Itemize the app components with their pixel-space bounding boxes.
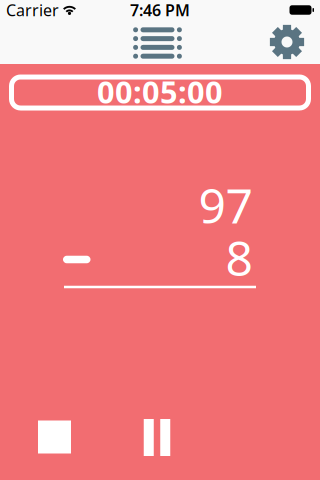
staticText: 7:46 PM xyxy=(130,0,190,21)
button[interactable]: Settings xyxy=(269,24,305,60)
button[interactable]: Problem List xyxy=(133,27,182,59)
button[interactable]: Pause xyxy=(144,419,170,456)
staticText: 00:05:00 xyxy=(97,71,223,112)
staticText: 8 xyxy=(225,226,252,289)
staticText: 97 xyxy=(198,173,252,237)
button[interactable]: Stop xyxy=(38,420,71,453)
staticText: Carrier xyxy=(6,0,59,21)
